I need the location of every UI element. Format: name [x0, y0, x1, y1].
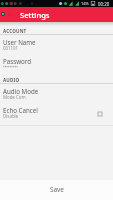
staticText: Mode Com: [3, 94, 26, 100]
staticText: AUDIO: [3, 77, 20, 83]
button[interactable]: Echo Cancel: [0, 105, 113, 124]
staticText: ACCOUNT: [3, 28, 27, 34]
button[interactable]: Audio Mode: [0, 86, 113, 105]
staticText: Save: [50, 185, 64, 194]
button[interactable]: Save: [0, 180, 113, 200]
staticText: Audio Mode: [3, 87, 39, 95]
button[interactable]: User Name: [0, 37, 113, 56]
staticText: Settings: [20, 10, 50, 20]
staticText: 14%: [81, 1, 89, 6]
staticText: User Name: [3, 38, 36, 46]
button[interactable]: Echo Cancel checkbox: [95, 109, 105, 119]
button[interactable]: App icon: [1, 12, 5, 16]
staticText: Echo Cancel: [3, 106, 38, 114]
staticText: Disable: [3, 113, 19, 119]
staticText: •••••••••: [3, 64, 18, 70]
staticText: 00:20: [98, 1, 110, 7]
staticText: 001101: [3, 45, 19, 51]
button[interactable]: Password: [0, 56, 113, 75]
staticText: Password: [3, 57, 31, 65]
